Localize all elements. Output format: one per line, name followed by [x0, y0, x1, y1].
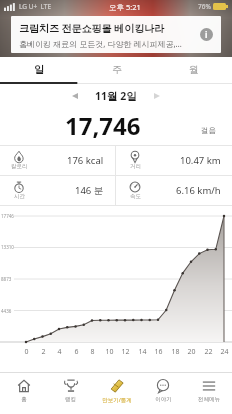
- button[interactable]: 이전 날짜: [65, 86, 85, 106]
- staticText: 거리: [130, 163, 141, 170]
- staticText: 홈베이킹 재료의 모든것, 다양한 레시피제공,…: [19, 38, 182, 49]
- staticText: 칼로리: [11, 163, 28, 170]
- staticText: 오후 5:21: [109, 2, 141, 12]
- button[interactable]: 다음 날짜: [147, 86, 167, 106]
- staticText: 2: [41, 347, 46, 357]
- staticText: 주: [112, 63, 122, 76]
- staticText: 20: [187, 347, 196, 357]
- button[interactable]: 시간: [0, 176, 115, 205]
- staticText: 18: [171, 347, 180, 357]
- staticText: 17,746: [65, 109, 141, 142]
- staticText: 8: [90, 347, 95, 357]
- staticText: 17746: [1, 213, 14, 219]
- button[interactable]: 크림치즈 전문쇼핑몰 베이킹나라: [11, 16, 221, 53]
- staticText: 속도: [130, 193, 141, 200]
- staticText: 76%: [198, 2, 211, 11]
- staticText: 24: [220, 347, 229, 357]
- staticText: 만보기/통계: [102, 396, 132, 404]
- staticText: 176 kcal: [67, 154, 104, 167]
- button[interactable]: 광고 정보: [200, 28, 213, 41]
- button[interactable]: 랭킹: [47, 373, 94, 414]
- button[interactable]: 월: [155, 57, 232, 82]
- staticText: 크림치즈 전문쇼핑몰 베이킹나라: [19, 21, 165, 35]
- staticText: 이야기: [155, 396, 172, 403]
- button[interactable]: 홈: [0, 373, 47, 414]
- staticText: 6.16 km/h: [176, 184, 221, 197]
- button[interactable]: 이야기: [140, 373, 186, 414]
- staticText: 4436: [1, 308, 12, 314]
- staticText: 6: [74, 347, 79, 357]
- staticText: 22: [204, 347, 213, 357]
- staticText: 12: [121, 347, 130, 357]
- staticText: 10.47 km: [180, 154, 221, 167]
- staticText: 랭킹: [65, 396, 76, 403]
- staticText: 13310: [1, 244, 14, 250]
- staticText: 걸음: [201, 126, 216, 135]
- button[interactable]: 전체메뉴: [186, 373, 232, 414]
- staticText: 전체메뉴: [198, 396, 220, 403]
- staticText: 11월 2일: [95, 89, 137, 103]
- staticText: LG U+ LTE: [19, 2, 52, 11]
- staticText: 8873: [1, 276, 12, 282]
- button[interactable]: 일: [0, 57, 78, 82]
- staticText: 16: [154, 347, 163, 357]
- button[interactable]: 주: [78, 57, 155, 82]
- staticText: 홈: [21, 396, 27, 403]
- button[interactable]: 속도: [116, 176, 232, 205]
- staticText: 146 분: [75, 184, 104, 197]
- staticText: 14: [138, 347, 147, 357]
- staticText: 월: [189, 63, 199, 76]
- button[interactable]: 칼로리: [0, 146, 115, 175]
- staticText: 0: [24, 347, 29, 357]
- button[interactable]: 만보기 통계: [94, 373, 140, 414]
- staticText: 일: [34, 63, 44, 76]
- staticText: 4: [57, 347, 62, 357]
- button[interactable]: 거리: [116, 146, 232, 175]
- staticText: 10: [105, 347, 114, 357]
- staticText: i: [205, 29, 208, 40]
- staticText: 시간: [14, 193, 25, 200]
